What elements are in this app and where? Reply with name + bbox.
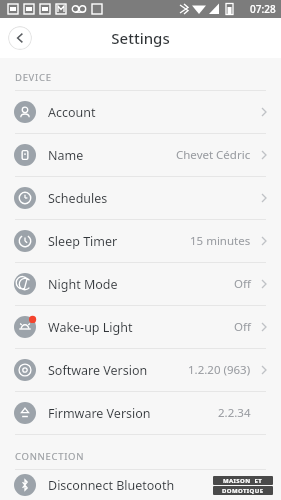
button[interactable]: Sleep Timer (0, 220, 281, 262)
staticText: 2.2.34 (218, 405, 251, 421)
staticText: 07:28 (250, 2, 276, 16)
button[interactable]: Disconnect Bluetooth (0, 470, 281, 500)
staticText: Wake-up Light (48, 319, 133, 336)
staticText: DEVICE (15, 71, 52, 84)
staticText: 15 minutes (190, 233, 251, 249)
button[interactable]: Schedules (0, 177, 281, 219)
button[interactable]: Name (0, 134, 281, 176)
staticText: Account (48, 104, 96, 121)
button[interactable]: Back (8, 26, 32, 50)
staticText: Off (234, 276, 251, 292)
staticText: Firmware Version (48, 405, 151, 422)
staticText: CONNECTION (15, 450, 85, 463)
staticText: Name (48, 147, 84, 164)
button[interactable]: Software Version (0, 349, 281, 391)
staticText: Disconnect Bluetooth (48, 477, 175, 494)
staticText: Schedules (48, 190, 108, 207)
button[interactable]: Night Mode (0, 263, 281, 305)
staticText: DOMOTIQUE (222, 487, 264, 495)
staticText: MAISON ET (223, 477, 263, 485)
staticText: Off (234, 319, 251, 335)
staticText: Sleep Timer (48, 233, 118, 250)
button[interactable]: Firmware Version (0, 392, 281, 434)
staticText: Software Version (48, 362, 148, 379)
button[interactable]: Account (0, 91, 281, 133)
staticText: 1.2.20 (963) (188, 362, 251, 378)
staticText: Chevet Cédric (176, 147, 251, 163)
staticText: Settings (111, 28, 170, 48)
button[interactable]: Wake-up Light (0, 306, 281, 348)
staticText: Night Mode (48, 276, 118, 293)
